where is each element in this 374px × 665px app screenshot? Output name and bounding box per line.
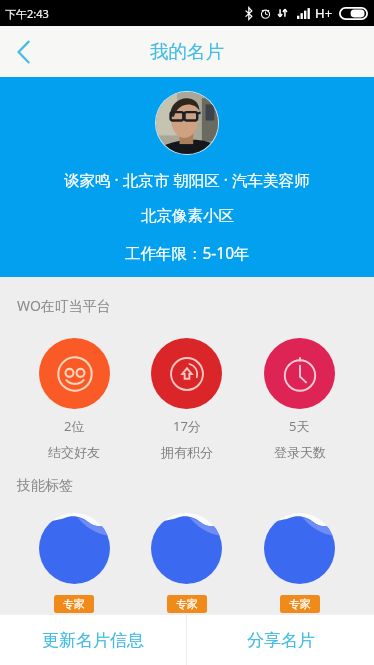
staticText: 拥有积分 [161, 444, 213, 460]
button[interactable]: Back [0, 26, 46, 77]
staticText: 技能标签 [17, 477, 73, 495]
button[interactable]: Skill tag [151, 513, 222, 588]
staticText: 北京像素小区 [141, 206, 234, 226]
button[interactable]: 专家 [63, 597, 85, 611]
staticText: 5天 [289, 417, 310, 435]
staticText: 分享名片 [247, 630, 315, 651]
button[interactable]: Skill tag [264, 513, 335, 588]
staticText: 我的名片 [150, 40, 224, 63]
staticText: 更新名片信息 [42, 630, 144, 651]
button[interactable]: 登录天数 [264, 338, 335, 409]
button[interactable]: 专家 [289, 597, 311, 611]
button[interactable]: Skill tag [39, 513, 110, 588]
button[interactable]: 拥有积分 [151, 338, 222, 409]
button[interactable]: 专家 [176, 597, 198, 611]
button[interactable]: 结交好友 [39, 338, 110, 409]
staticText: 谈家鸣 · 北京市 朝阳区 · 汽车美容师 [64, 169, 310, 190]
staticText: 2位 [64, 417, 85, 435]
button[interactable]: 分享名片 [187, 615, 374, 665]
staticText: 17分 [173, 417, 201, 435]
staticText: 登录天数 [274, 444, 326, 460]
staticText: WO在叮当平台 [17, 296, 111, 315]
button[interactable]: Profile photo [155, 91, 219, 155]
staticText: 专家 [63, 597, 85, 611]
staticText: 专家 [176, 597, 198, 611]
staticText: H+ [315, 4, 333, 22]
staticText: 下午2:43 [5, 6, 49, 21]
staticText: 专家 [289, 597, 311, 611]
staticText: 工作年限：5-10年 [125, 242, 250, 263]
button[interactable]: 更新名片信息 [0, 615, 186, 665]
staticText: 结交好友 [48, 444, 100, 460]
